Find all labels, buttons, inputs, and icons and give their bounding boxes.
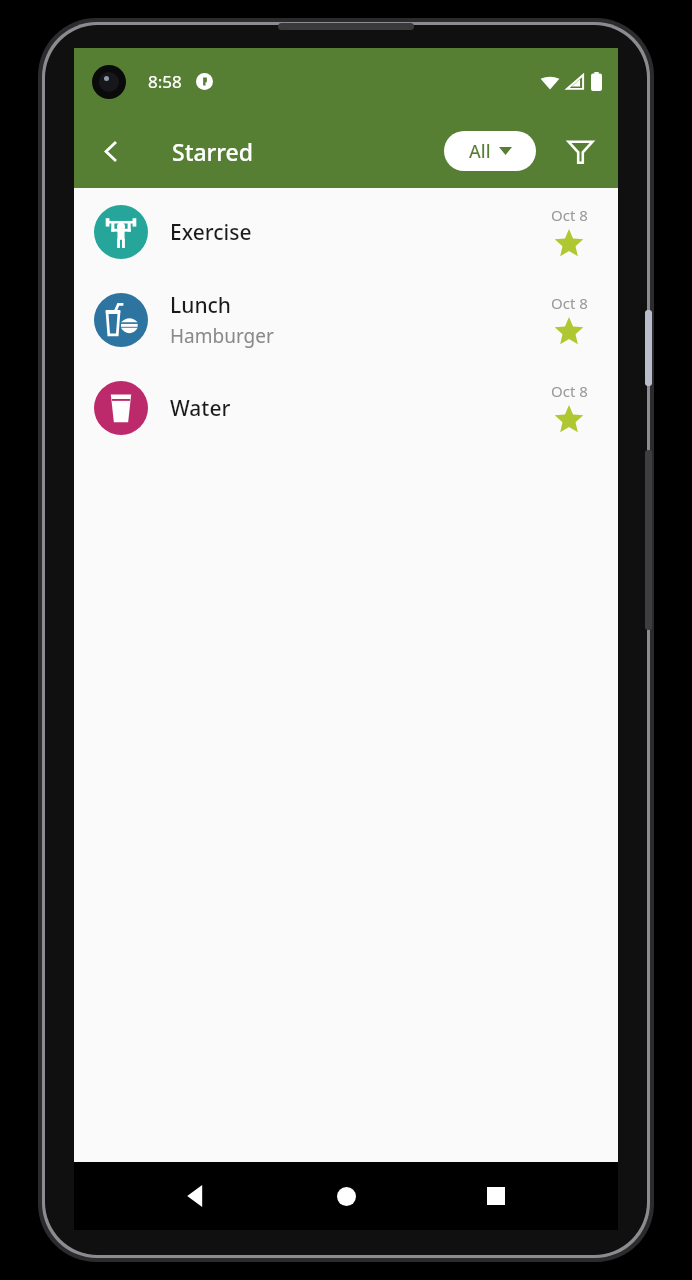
staticText: 8:58 <box>148 70 182 93</box>
staticText: Oct 8 <box>551 293 588 313</box>
button[interactable]: All <box>444 131 536 171</box>
button[interactable]: Water <box>74 364 618 452</box>
button[interactable]: Recents <box>468 1168 524 1224</box>
staticText: Exercise <box>170 218 252 247</box>
staticText: Oct 8 <box>551 205 588 225</box>
staticText: Hamburger <box>170 323 274 349</box>
staticText: Starred <box>172 136 254 167</box>
button[interactable]: Lunch <box>74 276 618 364</box>
staticText: Water <box>170 394 231 423</box>
staticText: Lunch <box>170 291 232 320</box>
button[interactable]: Filter <box>556 127 604 175</box>
button[interactable]: Back <box>86 126 136 176</box>
button[interactable]: Home <box>318 1168 374 1224</box>
staticText: All <box>469 139 491 164</box>
button[interactable]: Exercise <box>74 188 618 276</box>
staticText: Oct 8 <box>551 381 588 401</box>
button[interactable]: Back <box>168 1168 224 1224</box>
